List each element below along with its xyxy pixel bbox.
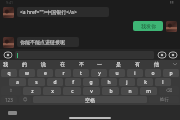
staticText: e bbox=[44, 70, 47, 77]
button[interactable]: c bbox=[63, 87, 81, 95]
staticText: 我 bbox=[3, 61, 8, 67]
staticText: l bbox=[162, 79, 164, 86]
button[interactable]: 空格 bbox=[33, 96, 147, 103]
button[interactable]: x bbox=[43, 87, 61, 95]
staticText: p bbox=[169, 70, 173, 77]
button[interactable]: k bbox=[137, 78, 153, 86]
button[interactable]: j bbox=[119, 78, 135, 86]
button[interactable]: q bbox=[1, 69, 17, 77]
button[interactable]: b bbox=[102, 87, 119, 95]
button[interactable]: Backspace bbox=[159, 86, 179, 95]
button[interactable]: y bbox=[91, 69, 107, 77]
button[interactable]: 的 bbox=[21, 61, 28, 67]
staticText: y bbox=[98, 70, 101, 77]
staticText: 他 bbox=[154, 61, 159, 67]
button[interactable]: 是 bbox=[115, 61, 122, 67]
button[interactable]: i bbox=[127, 69, 143, 77]
staticText: q bbox=[7, 70, 11, 77]
staticText: 不 bbox=[79, 61, 84, 67]
button[interactable]: f bbox=[65, 78, 81, 86]
staticText: g bbox=[89, 79, 93, 86]
staticText: w bbox=[25, 70, 29, 77]
staticText: a bbox=[16, 79, 19, 86]
button[interactable]: Numbers bbox=[1, 96, 17, 103]
staticText: o bbox=[151, 70, 155, 77]
staticText: x bbox=[51, 88, 54, 95]
button[interactable]: z bbox=[23, 87, 41, 95]
button[interactable]: Voice input bbox=[3, 51, 12, 58]
staticText: 是 bbox=[116, 61, 121, 67]
button[interactable]: e bbox=[37, 69, 53, 77]
staticText: t bbox=[80, 70, 82, 77]
staticText: n bbox=[128, 88, 132, 95]
button[interactable]: r bbox=[55, 69, 71, 77]
staticText: u bbox=[115, 70, 119, 77]
staticText: ⇧ bbox=[9, 88, 13, 93]
staticText: s bbox=[35, 79, 38, 86]
staticText: k bbox=[144, 79, 147, 86]
button[interactable]: 说 bbox=[40, 61, 47, 67]
button[interactable]: n bbox=[121, 87, 138, 95]
button[interactable]: 有 bbox=[134, 61, 141, 67]
staticText: b bbox=[109, 88, 113, 95]
button[interactable]: 在 bbox=[59, 61, 66, 67]
staticText: 说 bbox=[41, 61, 46, 67]
button[interactable]: 我 bbox=[2, 61, 9, 67]
button[interactable]: h bbox=[101, 78, 117, 86]
button[interactable]: <a href="">中国银行</a> bbox=[17, 7, 109, 17]
button[interactable]: 不 bbox=[78, 61, 85, 67]
button[interactable]: s bbox=[28, 78, 45, 86]
staticText: i bbox=[134, 70, 136, 77]
staticText: 一 bbox=[97, 61, 102, 67]
button[interactable]: 换行 bbox=[149, 96, 179, 103]
staticText: f bbox=[72, 79, 74, 86]
button[interactable]: Emoji bbox=[157, 51, 166, 58]
button[interactable]: Shift bbox=[1, 86, 21, 95]
staticText: 换行 bbox=[160, 97, 169, 103]
staticText: 9:41 bbox=[6, 0, 13, 5]
button[interactable]: g bbox=[83, 78, 99, 86]
staticText: m bbox=[146, 88, 151, 95]
button[interactable]: Emoji keyboard bbox=[19, 96, 31, 103]
staticText: ▮▮ bbox=[170, 0, 174, 4]
staticText: 你能不能点进链接呢 bbox=[20, 39, 65, 45]
button[interactable]: v bbox=[83, 87, 100, 95]
staticText: d bbox=[53, 79, 57, 86]
staticText: h bbox=[107, 79, 111, 86]
button[interactable]: Collapse bbox=[172, 61, 178, 67]
staticText: v bbox=[90, 88, 93, 95]
staticText: <a href="">中国银行</a> bbox=[20, 9, 77, 16]
staticText: 在 bbox=[60, 61, 65, 67]
button[interactable]: d bbox=[47, 78, 63, 86]
button[interactable]: w bbox=[19, 69, 35, 77]
button[interactable] bbox=[15, 51, 154, 59]
button[interactable]: 你能不能点进链接呢 bbox=[17, 37, 79, 47]
button[interactable]: l bbox=[155, 78, 171, 86]
button[interactable]: u bbox=[109, 69, 125, 77]
staticText: 空格 bbox=[85, 97, 95, 103]
staticText: 123 bbox=[5, 97, 13, 103]
button[interactable]: p bbox=[163, 69, 179, 77]
button[interactable]: t bbox=[73, 69, 89, 77]
staticText: 我发你 bbox=[141, 23, 156, 29]
button[interactable]: a bbox=[9, 78, 26, 86]
staticText: ☺ bbox=[23, 97, 28, 102]
button[interactable]: More bbox=[168, 51, 177, 58]
button[interactable]: o bbox=[145, 69, 161, 77]
staticText: ⌫ bbox=[166, 88, 173, 93]
button[interactable]: 一 bbox=[96, 61, 103, 67]
staticText: j bbox=[126, 79, 128, 86]
staticText: 的 bbox=[22, 61, 27, 67]
staticText: r bbox=[62, 70, 65, 77]
staticText: c bbox=[71, 88, 74, 95]
staticText: z bbox=[31, 88, 34, 95]
button[interactable]: 他 bbox=[153, 61, 160, 67]
button[interactable]: 我发你 bbox=[133, 21, 163, 31]
button[interactable]: m bbox=[140, 87, 157, 95]
staticText: 有 bbox=[135, 61, 140, 67]
button[interactable]: Keyboard switch bbox=[8, 111, 17, 115]
